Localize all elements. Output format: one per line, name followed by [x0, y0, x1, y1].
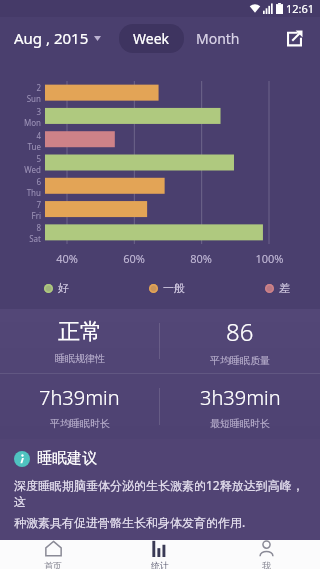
staticText: Month [196, 29, 240, 48]
staticText: 4 [36, 130, 41, 141]
staticText: Tue [27, 141, 41, 152]
staticText: 3h39min [200, 384, 281, 411]
staticText: 12:61 [286, 1, 315, 16]
staticText: 差 [279, 281, 290, 295]
staticText: 种激素具有促进骨骼生长和身体发育的作用. [14, 514, 246, 530]
button[interactable]: 我 [213, 540, 320, 569]
staticText: Mon [23, 117, 41, 128]
staticText: Aug , 2015 [14, 28, 89, 48]
staticText: 统计 [151, 560, 169, 569]
staticText: 100% [255, 251, 284, 266]
staticText: 最短睡眠时长 [210, 417, 270, 430]
staticText: Thu [26, 187, 41, 198]
staticText: Wed [24, 164, 41, 175]
staticText: 一般 [163, 281, 185, 295]
button[interactable]: 首页 [0, 540, 106, 569]
button[interactable]: Share [278, 22, 310, 54]
staticText: Fri [31, 210, 41, 221]
staticText: 86 [226, 315, 254, 348]
staticText: 2 [36, 82, 41, 93]
staticText: 3 [36, 106, 41, 117]
button[interactable]: Week [119, 24, 184, 53]
button[interactable]: 正常 [0, 309, 159, 373]
staticText: 正常 [58, 318, 102, 346]
button[interactable]: 统计 [106, 540, 213, 569]
staticText: 平均睡眠质量 [210, 354, 270, 367]
staticText: 首页 [44, 560, 62, 569]
button[interactable]: 3h39min [160, 374, 320, 439]
staticText: 80% [190, 251, 212, 266]
button[interactable]: 7h39min [0, 374, 159, 439]
staticText: Week [133, 29, 170, 48]
staticText: 睡眠规律性 [55, 352, 105, 365]
staticText: 40% [56, 251, 78, 266]
staticText: 7h39min [39, 384, 120, 411]
staticText: 我 [262, 560, 271, 569]
staticText: Sat [29, 233, 41, 244]
button[interactable]: 86 [160, 309, 320, 373]
staticText: 平均睡眠时长 [50, 417, 110, 430]
staticText: 8 [36, 222, 41, 233]
staticText: 睡眠建议 [37, 449, 97, 468]
staticText: 好 [58, 281, 69, 295]
button[interactable]: Aug , 2015 [10, 22, 105, 54]
staticText: Sun [26, 93, 41, 104]
staticText: 6 [36, 176, 41, 187]
staticText: 7 [36, 199, 41, 210]
staticText: 深度睡眠期脑垂体分泌的生长激素的12释放达到高峰，这 [14, 477, 308, 510]
staticText: 60% [123, 251, 145, 266]
button[interactable]: Month [190, 24, 246, 53]
staticText: 5 [36, 153, 41, 164]
